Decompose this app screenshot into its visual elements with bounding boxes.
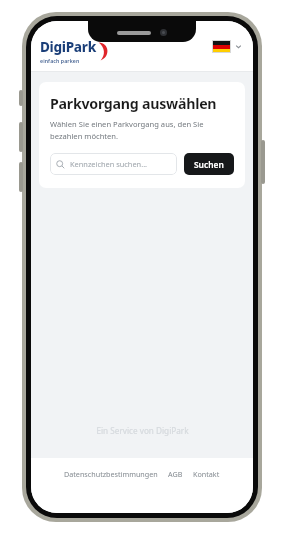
staticText: Datenschutzbestimmungen: [64, 469, 158, 479]
staticText: Kennzeichen suchen...: [70, 159, 148, 169]
staticText: AGB: [168, 469, 183, 479]
staticText: DigiPark: [40, 38, 96, 56]
button[interactable]: DigiPark: [40, 38, 110, 64]
staticText: Ein Service von DigiPark: [96, 425, 189, 436]
staticText: einfach parken: [40, 57, 80, 64]
button[interactable]: Suchen: [184, 153, 234, 175]
button[interactable]: AGB: [166, 467, 185, 481]
staticText: Parkvorgang auswählen: [50, 94, 217, 113]
staticText: Suchen: [194, 159, 224, 170]
button[interactable]: Datenschutzbestimmungen: [62, 467, 160, 481]
button[interactable]: Kontakt: [191, 467, 222, 481]
staticText: Kontakt: [193, 469, 220, 479]
staticText: Wählen Sie einen Parkvorgang aus, den Si…: [50, 119, 234, 141]
button[interactable]: Sprache wählen: Deutsch: [209, 37, 245, 56]
button[interactable]: Kennzeichen suchen...: [50, 153, 177, 175]
